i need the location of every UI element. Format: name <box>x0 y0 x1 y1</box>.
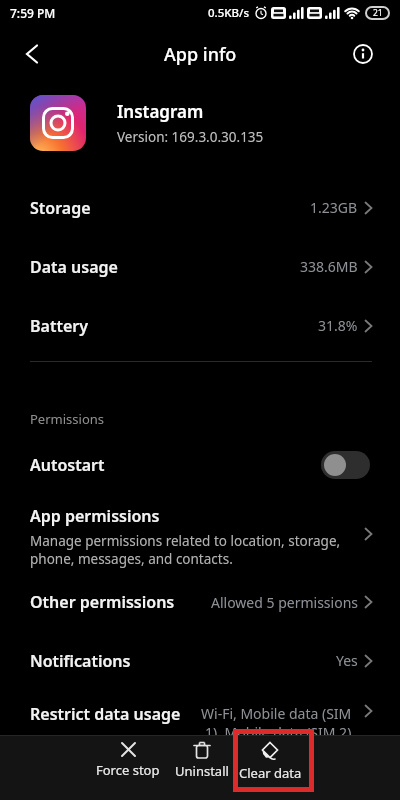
staticText: App info <box>164 42 237 67</box>
staticText: Force stop <box>96 761 160 779</box>
staticText: 0.5KB/s <box>208 5 250 21</box>
staticText: Permissions <box>30 410 105 428</box>
staticText: 1), Mobile data (SIM 2) <box>205 723 352 742</box>
button[interactable]: Uninstall <box>168 735 236 800</box>
staticText: Battery <box>30 315 88 337</box>
staticText: Manage permissions related to location, … <box>30 532 341 550</box>
button[interactable]: Restrict data usage <box>0 690 400 752</box>
staticText: App permissions <box>30 505 160 527</box>
button[interactable]: Notifications <box>0 631 400 690</box>
staticText: Allowed 5 permissions <box>211 593 358 612</box>
button[interactable]: Clear data <box>236 735 304 800</box>
staticText: 1.23GB <box>310 198 358 217</box>
staticText: phone, messages, and contacts. <box>30 550 233 568</box>
staticText: Version: 169.3.0.30.135 <box>117 128 264 146</box>
staticText: Notifications <box>30 650 131 672</box>
staticText: 7:59 PM <box>10 5 56 21</box>
button[interactable]: Other permissions <box>0 573 400 631</box>
staticText: 31.8% <box>318 316 358 335</box>
staticText: Yes <box>336 651 358 670</box>
staticText: Wi-Fi, Mobile data (SIM <box>201 704 352 723</box>
staticText: Uninstall <box>175 762 229 780</box>
staticText: Data usage <box>30 256 118 278</box>
staticText: Storage <box>30 197 91 219</box>
staticText: 21 <box>373 7 383 19</box>
staticText: 338.6MB <box>300 257 358 276</box>
staticText: Other permissions <box>30 591 175 613</box>
staticText: Instagram <box>117 100 204 123</box>
button[interactable]: Force stop <box>88 735 168 800</box>
staticText: Autostart <box>30 454 105 476</box>
button[interactable]: Storage <box>0 178 400 237</box>
button[interactable]: Battery <box>0 296 400 355</box>
button[interactable]: App permissions <box>0 494 400 573</box>
button[interactable]: Data usage <box>0 237 400 296</box>
button[interactable]: Autostart <box>0 436 400 494</box>
staticText: Restrict data usage <box>30 703 181 725</box>
staticText: Clear data <box>239 764 302 782</box>
button[interactable] <box>14 36 50 72</box>
button[interactable] <box>348 39 378 69</box>
